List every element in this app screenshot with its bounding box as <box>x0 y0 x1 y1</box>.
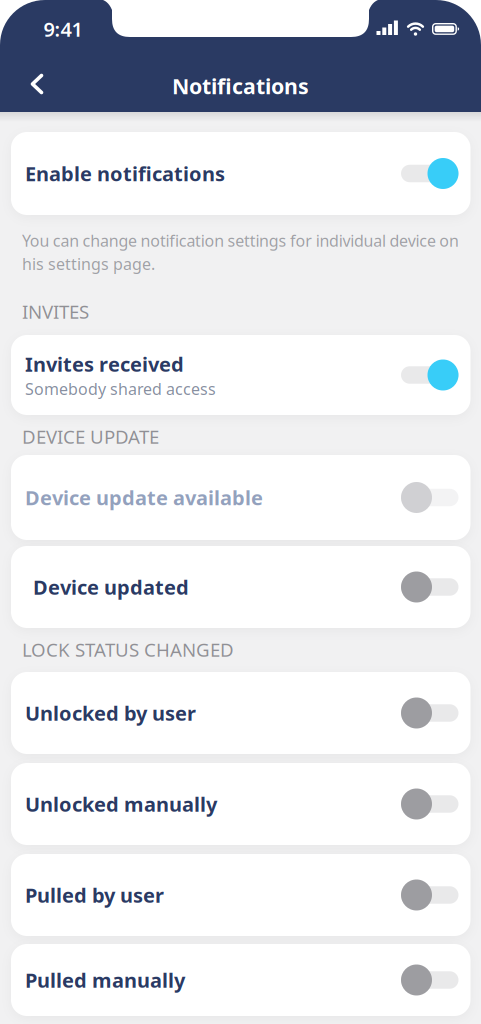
button[interactable]: Device updated <box>11 546 470 628</box>
staticText: Enable notifications <box>25 160 225 187</box>
button[interactable]: Enable notifications <box>11 132 470 215</box>
staticText: LOCK STATUS CHANGED <box>22 637 234 662</box>
staticText: 9:41 <box>43 16 82 42</box>
staticText: Unlocked by user <box>25 700 196 726</box>
button[interactable]: Invites received <box>11 335 470 415</box>
staticText: Pulled manually <box>25 967 185 993</box>
button[interactable]: Pulled manually <box>11 944 470 1016</box>
staticText: Invites received <box>25 351 184 377</box>
staticText: Notifications <box>172 72 309 100</box>
staticText: INVITES <box>22 299 89 324</box>
staticText: Device updated <box>33 574 189 600</box>
button[interactable]: Unlocked by user <box>11 672 470 754</box>
staticText: Device update available <box>25 484 263 511</box>
button[interactable]: Device update available <box>11 455 470 540</box>
staticText: Somebody shared access <box>25 378 216 399</box>
staticText: Unlocked manually <box>25 791 217 817</box>
button[interactable]: Unlocked manually <box>11 763 470 845</box>
staticText: Pulled by user <box>25 882 164 908</box>
staticText: You can change notification settings for… <box>22 230 459 251</box>
staticText: DEVICE UPDATE <box>22 424 159 449</box>
button[interactable]: Pulled by user <box>11 854 470 936</box>
staticText: his settings page. <box>22 253 155 274</box>
button[interactable]: Back <box>20 63 54 104</box>
